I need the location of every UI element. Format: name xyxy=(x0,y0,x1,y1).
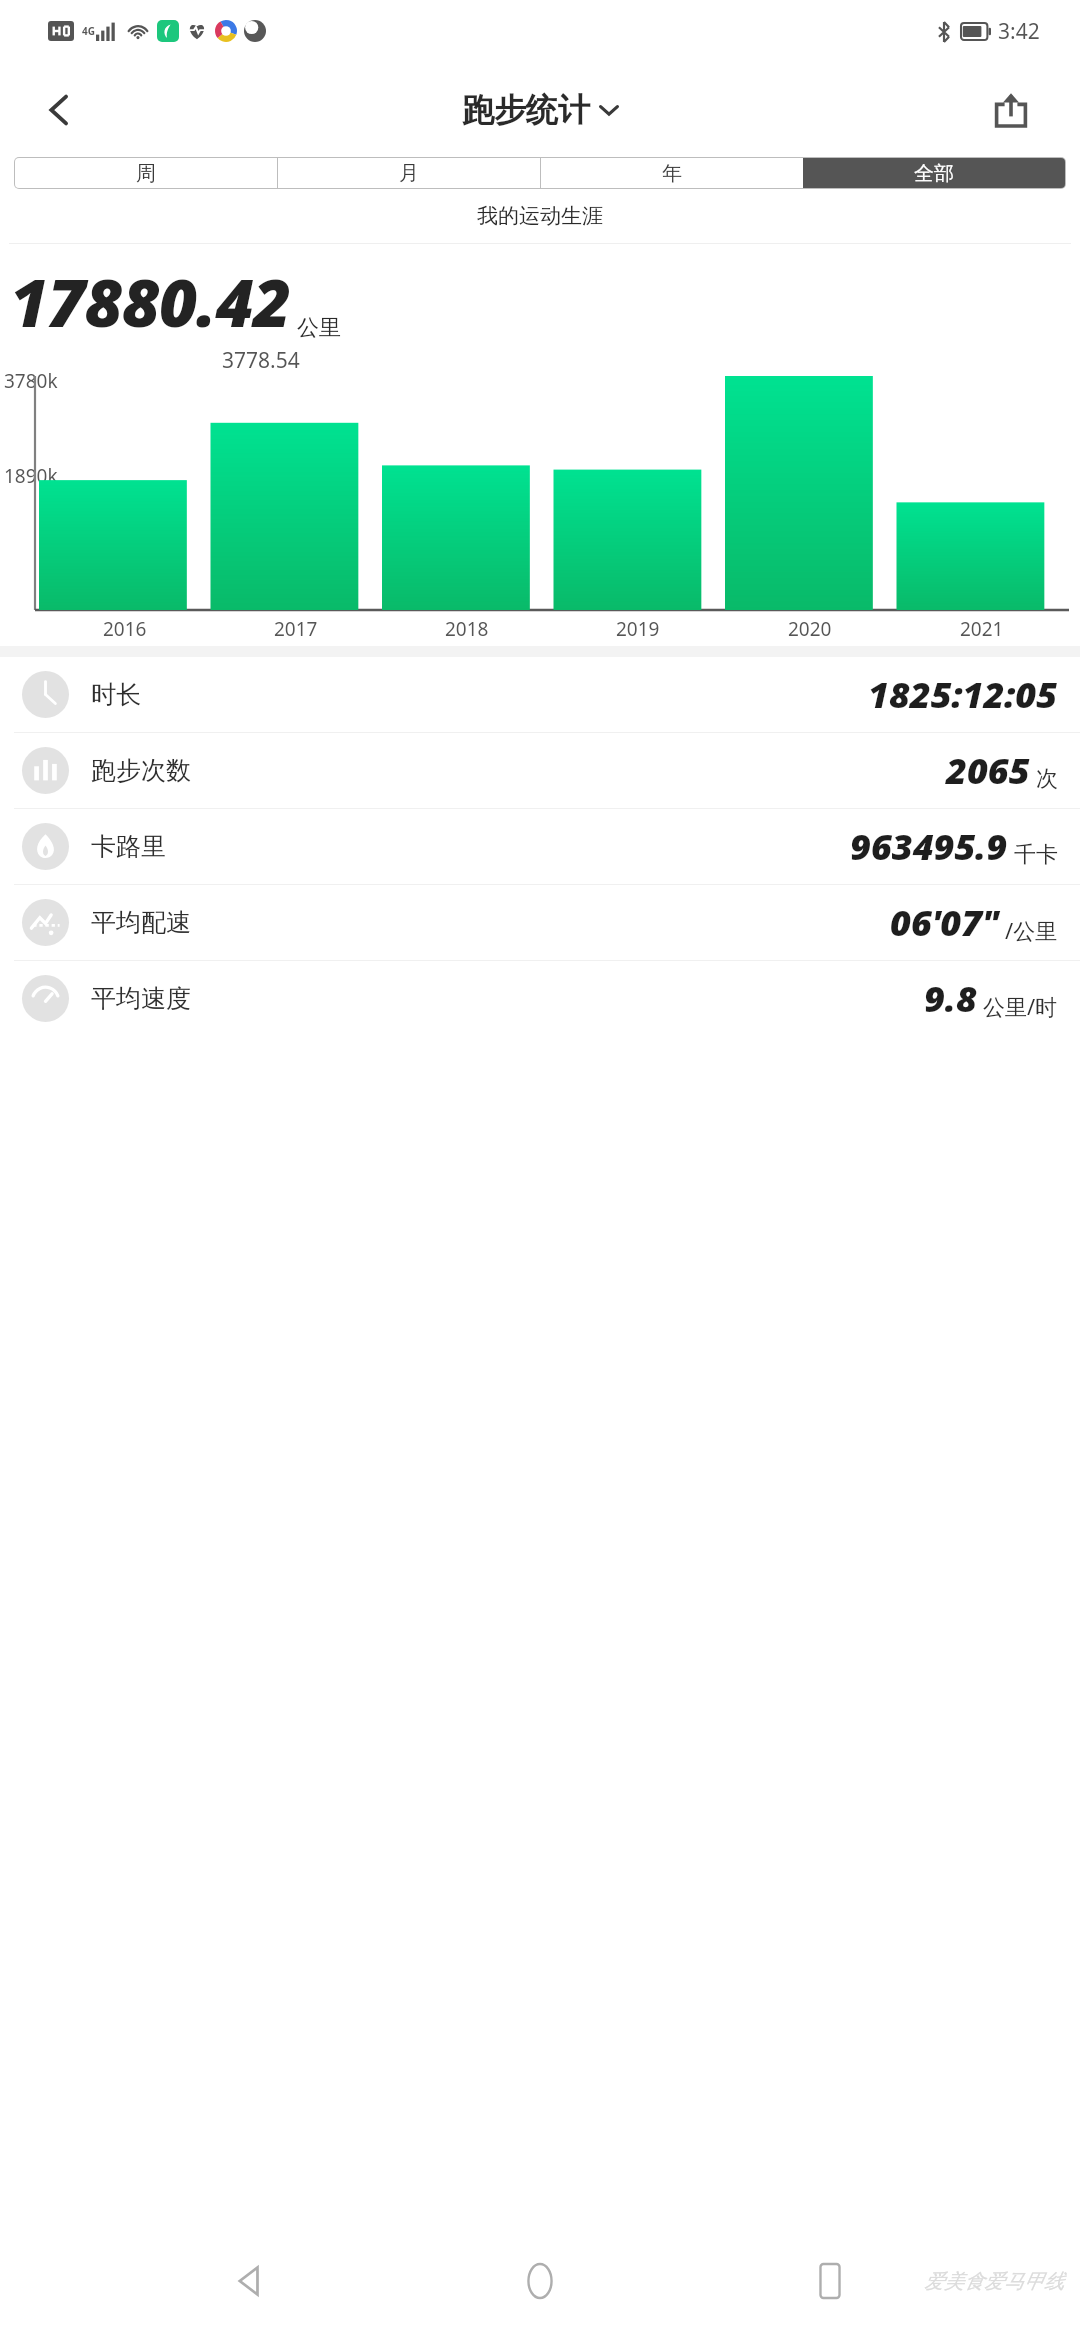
button[interactable]: 年 xyxy=(541,158,803,188)
staticText: 06'07" xyxy=(890,898,999,947)
staticText: 3778.54 xyxy=(222,346,300,375)
staticText: 3780k xyxy=(4,368,58,394)
staticText: 我的运动生涯 xyxy=(0,203,1080,229)
staticText: 月 xyxy=(399,161,419,186)
staticText: 963495.9 xyxy=(850,822,1008,871)
staticText: 1890k xyxy=(4,463,58,489)
staticText: 平均配速 xyxy=(91,907,191,938)
staticText: 3:42 xyxy=(998,17,1040,46)
staticText: 周 xyxy=(136,161,156,186)
button[interactable]: 平均速度 xyxy=(0,961,1080,1036)
staticText: 9.8 xyxy=(924,974,977,1023)
staticText: 2021 xyxy=(960,616,1004,642)
staticText: 跑步统计 xyxy=(462,90,590,130)
staticText: 年 xyxy=(662,161,682,186)
staticText: 2018 xyxy=(445,616,489,642)
button[interactable]: 卡路里 xyxy=(0,809,1080,884)
button[interactable]: Share xyxy=(980,79,1042,141)
button[interactable]: 跑步统计 xyxy=(462,90,619,130)
staticText: 全部 xyxy=(914,161,954,186)
staticText: 2019 xyxy=(616,616,660,642)
button[interactable]: 周 xyxy=(15,158,277,188)
button[interactable]: Back xyxy=(28,79,90,141)
staticText: 4G xyxy=(82,24,95,38)
staticText: 平均速度 xyxy=(91,983,191,1014)
button[interactable]: 跑步次数 xyxy=(0,733,1080,808)
button[interactable]: Recent apps xyxy=(790,2241,870,2321)
staticText: 2017 xyxy=(274,616,318,642)
button[interactable]: Home xyxy=(500,2241,580,2321)
button[interactable]: 时长 xyxy=(0,657,1080,732)
staticText: /公里 xyxy=(1005,915,1058,945)
staticText: 卡路里 xyxy=(91,831,166,862)
staticText: 千卡 xyxy=(1014,841,1058,869)
button[interactable]: 月 xyxy=(278,158,540,188)
staticText: 爱美食爱马甲线 xyxy=(924,2269,1064,2294)
button[interactable]: Back xyxy=(210,2241,290,2321)
staticText: 2016 xyxy=(103,616,147,642)
staticText: 跑步次数 xyxy=(91,755,191,786)
staticText: 2020 xyxy=(788,616,832,642)
staticText: 次 xyxy=(1036,765,1058,793)
staticText: 时长 xyxy=(91,679,141,710)
button[interactable]: 平均配速 xyxy=(0,885,1080,960)
staticText: 公里 xyxy=(297,314,341,342)
staticText: 公里/时 xyxy=(983,991,1058,1021)
staticText: 1825:12:05 xyxy=(868,670,1058,719)
staticText: 2065 xyxy=(946,746,1030,795)
button[interactable]: 全部 xyxy=(803,158,1065,188)
staticText: 17880.42 xyxy=(10,256,291,346)
